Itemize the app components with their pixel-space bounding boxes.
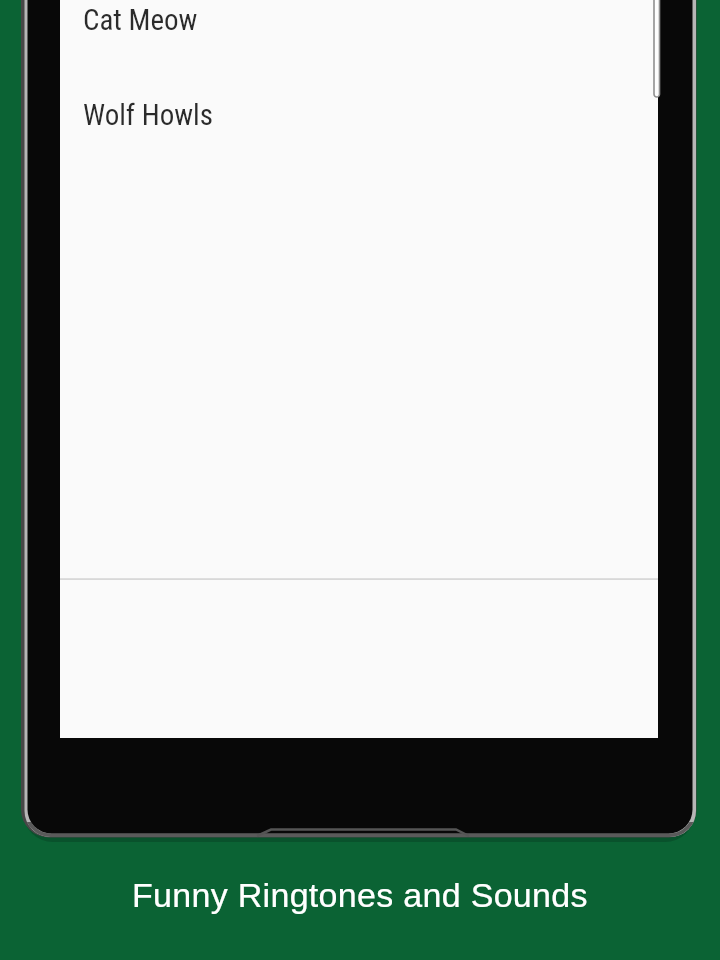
staticText: Funny Ringtones and Sounds bbox=[132, 876, 588, 914]
button[interactable]: Wolf Howls bbox=[60, 70, 658, 160]
staticText: Cat Meow bbox=[83, 3, 198, 37]
staticText: Wolf Howls bbox=[83, 98, 213, 132]
button[interactable]: Cat Meow bbox=[60, 0, 658, 65]
